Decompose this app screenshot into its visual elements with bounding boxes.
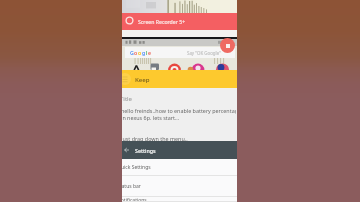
staticText: l	[146, 49, 148, 56]
staticText: Status bar	[122, 183, 141, 190]
button[interactable]: Stop recording	[220, 38, 235, 53]
button[interactable]: Open navigation drawer	[122, 70, 237, 88]
staticText: Quick Settings	[122, 164, 151, 171]
staticText: Notifications	[122, 197, 147, 202]
staticText: hello freinds..how to enable battery per…	[122, 107, 236, 121]
button[interactable]: Status bar	[122, 176, 237, 197]
other: Navigate up	[123, 146, 131, 154]
staticText: Keep	[135, 75, 150, 83]
staticText: just drag down the menu..	[122, 135, 188, 142]
staticText: o	[138, 49, 142, 56]
button[interactable]: Notifications	[122, 197, 237, 202]
staticText: G	[130, 49, 134, 56]
staticText: o	[134, 49, 138, 56]
button[interactable]: G	[125, 47, 235, 58]
button[interactable]: Navigate up	[122, 141, 237, 159]
button[interactable]: Quick Settings	[122, 159, 237, 176]
button[interactable]: Screen Recorder 5+	[122, 13, 237, 30]
staticText: Settings	[135, 147, 156, 154]
staticText: Title	[122, 95, 132, 103]
staticText: Screen Recorder 5+	[138, 18, 186, 25]
staticText: e	[148, 49, 151, 56]
staticText: Say "OK Google"	[187, 50, 221, 56]
other: Open navigation drawer	[122, 73, 131, 85]
staticText: g	[142, 49, 146, 56]
